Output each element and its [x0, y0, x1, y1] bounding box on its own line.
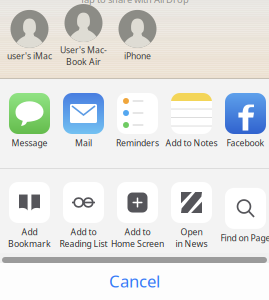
staticText: Book Air — [66, 56, 101, 68]
button[interactable]: Add — [2, 182, 56, 250]
staticText: Tap to share with AirDrop — [80, 0, 189, 6]
staticText: Mail — [75, 137, 92, 149]
button[interactable]: Add to — [56, 182, 110, 250]
button[interactable]: User's Mac- — [56, 4, 110, 68]
staticText: in News — [175, 238, 207, 250]
staticText: Bookmark — [8, 238, 51, 250]
button[interactable]: Add to — [110, 182, 164, 250]
button[interactable]: Message — [2, 93, 56, 149]
staticText: iPhone — [124, 50, 151, 62]
button[interactable]: Mail — [56, 93, 110, 149]
button[interactable]: Find on Page — [218, 188, 269, 244]
staticText: Add — [21, 226, 37, 238]
staticText: Home Screen — [111, 238, 164, 250]
button[interactable]: Reminders — [110, 93, 164, 149]
staticText: Reading List — [59, 238, 107, 250]
staticText: Add to — [124, 226, 150, 238]
button[interactable]: Cancel — [0, 263, 269, 300]
staticText: Message — [11, 137, 47, 149]
button[interactable]: Add to Notes — [164, 93, 218, 149]
button[interactable]: iPhone — [110, 10, 164, 62]
button[interactable]: user's iMac — [2, 10, 56, 62]
staticText: User's Mac- — [60, 44, 107, 56]
button[interactable]: Open — [164, 182, 218, 250]
staticText: Find on Page — [220, 232, 269, 244]
staticText: Cancel — [109, 270, 160, 292]
staticText: Facebook — [226, 137, 264, 149]
staticText: Open — [180, 226, 202, 238]
button[interactable]: Facebook — [218, 93, 269, 149]
staticText: Reminders — [116, 137, 159, 149]
staticText: user's iMac — [7, 50, 52, 62]
staticText: Add to — [70, 226, 96, 238]
staticText: Add to Notes — [165, 137, 217, 149]
